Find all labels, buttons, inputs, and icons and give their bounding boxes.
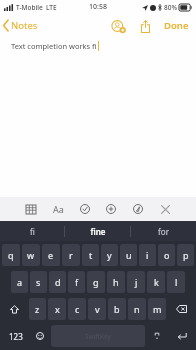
- button[interactable]: h: [107, 271, 125, 293]
- button[interactable]: r: [62, 244, 80, 266]
- staticText: Text completion works fi: [11, 41, 97, 51]
- staticText: e: [48, 249, 54, 261]
- staticText: T-Mobile: [16, 3, 43, 12]
- button[interactable]: Notes: [0, 16, 44, 35]
- staticText: u: [126, 249, 132, 261]
- staticText: Notes: [11, 19, 38, 32]
- button[interactable]: Format: [49, 200, 67, 218]
- button[interactable]: k: [147, 271, 165, 293]
- button[interactable]: Delete: [168, 298, 194, 320]
- staticText: b: [114, 303, 120, 315]
- staticText: d: [55, 276, 61, 288]
- staticText: k: [154, 276, 159, 288]
- staticText: f: [75, 276, 79, 288]
- button[interactable]: y: [101, 244, 118, 266]
- button[interactable]: Close keyboard: [156, 200, 174, 218]
- staticText: g: [93, 276, 99, 288]
- staticText: y: [107, 249, 112, 261]
- button[interactable]: m: [148, 298, 166, 320]
- staticText: i: [146, 249, 149, 261]
- staticText: fi: [30, 226, 35, 237]
- staticText: 10:58: [89, 2, 107, 12]
- staticText: LTE: [46, 3, 57, 12]
- staticText: n: [134, 303, 140, 315]
- button[interactable]: v: [88, 298, 106, 320]
- button[interactable]: Text completion works fi: [0, 36, 196, 197]
- button[interactable]: 123: [2, 325, 29, 347]
- button[interactable]: for: [131, 221, 196, 241]
- button[interactable]: Markup: [129, 200, 147, 218]
- button[interactable]: fi: [0, 221, 64, 241]
- staticText: j: [135, 276, 138, 288]
- staticText: z: [35, 303, 40, 315]
- button[interactable]: x: [48, 298, 66, 320]
- staticText: q: [8, 249, 14, 261]
- button[interactable]: Settings: [147, 325, 167, 347]
- staticText: l: [175, 276, 178, 288]
- button[interactable]: n: [128, 298, 146, 320]
- button[interactable]: Enter: [169, 325, 194, 347]
- staticText: s: [36, 276, 41, 288]
- button[interactable]: c: [68, 298, 86, 320]
- button[interactable]: Add attachment: [102, 200, 120, 218]
- staticText: h: [113, 276, 119, 288]
- staticText: o: [164, 249, 170, 261]
- button[interactable]: w: [22, 244, 40, 266]
- staticText: m: [153, 303, 162, 315]
- button[interactable]: d: [49, 271, 66, 293]
- staticText: 80%: [164, 3, 177, 12]
- button[interactable]: i: [139, 244, 156, 266]
- button[interactable]: s: [30, 271, 47, 293]
- staticText: r: [69, 249, 73, 261]
- staticText: c: [75, 303, 80, 315]
- button[interactable]: b: [108, 298, 126, 320]
- button[interactable]: l: [167, 271, 185, 293]
- button[interactable]: Done: [162, 16, 191, 35]
- button[interactable]: Share: [136, 17, 154, 35]
- button[interactable]: o: [158, 244, 175, 266]
- staticText: SwiftKey: [85, 332, 111, 341]
- staticText: a: [17, 276, 23, 288]
- staticText: x: [55, 303, 60, 315]
- staticText: fine: [90, 226, 106, 237]
- staticText: p: [183, 249, 189, 261]
- button[interactable]: Checklist: [76, 200, 94, 218]
- staticText: 123: [9, 331, 23, 342]
- staticText: Done: [164, 19, 189, 32]
- button[interactable]: u: [120, 244, 137, 266]
- staticText: v: [95, 303, 100, 315]
- staticText: for: [158, 226, 169, 237]
- button[interactable]: e: [42, 244, 60, 266]
- button[interactable]: g: [87, 271, 105, 293]
- button[interactable]: f: [68, 271, 85, 293]
- button[interactable]: j: [127, 271, 145, 293]
- button[interactable]: t: [82, 244, 99, 266]
- button[interactable]: q: [2, 244, 20, 266]
- button[interactable]: p: [177, 244, 194, 266]
- staticText: Aa: [53, 203, 64, 215]
- button[interactable]: Table: [22, 200, 40, 218]
- button[interactable]: z: [29, 298, 46, 320]
- button[interactable]: Shift: [2, 298, 27, 320]
- button[interactable]: fine: [65, 221, 130, 241]
- staticText: w: [27, 249, 35, 261]
- button[interactable]: a: [11, 271, 28, 293]
- button[interactable]: Add people: [109, 17, 127, 35]
- button[interactable]: Emoji: [31, 325, 49, 347]
- staticText: t: [89, 249, 93, 261]
